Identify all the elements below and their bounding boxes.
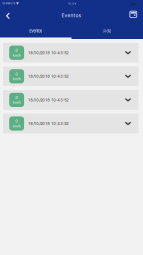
button[interactable]: 0 bbox=[3, 114, 138, 133]
staticText: 0 bbox=[15, 48, 18, 53]
staticText: 18/10/2018 10:43:52 bbox=[28, 121, 68, 126]
staticText: Rota bbox=[103, 29, 111, 33]
staticText: 0 bbox=[15, 95, 18, 100]
staticText: km/h bbox=[13, 77, 21, 81]
staticText: 0 bbox=[15, 119, 18, 123]
staticText: Eventos bbox=[29, 29, 42, 33]
staticText: Eventos bbox=[61, 13, 81, 18]
staticText: km/h bbox=[13, 100, 21, 105]
staticText: 18/10/2018 10:43:52 bbox=[28, 97, 68, 102]
staticText: 18/10/2018 10:43:52 bbox=[28, 74, 68, 79]
button[interactable]: 0 bbox=[3, 90, 138, 110]
button[interactable]: Back bbox=[0, 0, 13, 13]
staticText: 15:54 bbox=[68, 2, 76, 5]
button[interactable]: 0 bbox=[3, 66, 138, 86]
button[interactable]: 0 bbox=[3, 43, 138, 63]
button[interactable]: Eventos bbox=[0, 0, 71, 16]
staticText: km/h bbox=[13, 124, 21, 128]
staticText: 18/10/2018 10:43:52 bbox=[28, 50, 68, 55]
staticText: km/h bbox=[13, 53, 21, 57]
staticText: 0 bbox=[15, 71, 18, 76]
button[interactable]: Calendar bbox=[0, 0, 13, 13]
staticText: Operadora bbox=[2, 2, 15, 5]
button[interactable]: Rota bbox=[0, 0, 71, 16]
